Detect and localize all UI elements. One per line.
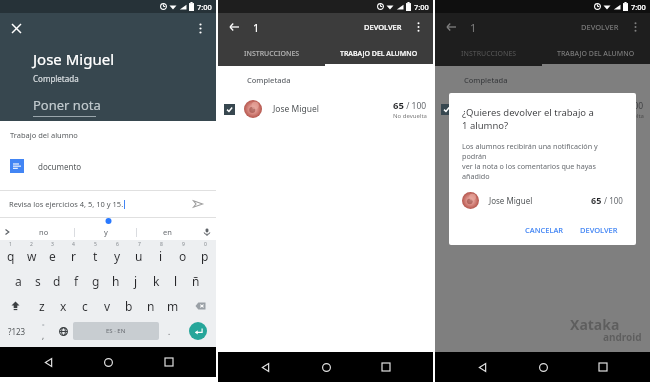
button[interactable]: ñ (186, 268, 206, 293)
button[interactable]: c (74, 293, 96, 318)
staticText: x (60, 298, 67, 314)
button[interactable]: documento (0, 154, 216, 178)
staticText: Jose Miguel (273, 103, 319, 115)
button[interactable]: s (28, 268, 47, 293)
button[interactable]: 3 (42, 240, 63, 268)
button[interactable]: ES · EN (73, 322, 159, 340)
button[interactable]: More options (189, 17, 211, 39)
button[interactable]: Expand (0, 224, 14, 240)
button[interactable]: Send (189, 195, 207, 213)
button[interactable]: 7 (128, 240, 150, 268)
button[interactable]: Home (95, 349, 121, 375)
button[interactable]: b (118, 293, 140, 318)
button[interactable]: Change language (53, 318, 73, 344)
staticText: Revisa los ejercicios 4, 5, 10 y 15. (9, 199, 124, 209)
button[interactable]: CANCELAR (520, 221, 569, 239)
button[interactable]: z (31, 293, 52, 318)
button[interactable]: Home (530, 354, 556, 380)
button[interactable]: More options (625, 17, 645, 37)
button[interactable]: Backspace (184, 293, 216, 318)
staticText: / 100 (621, 100, 644, 112)
button[interactable]: DEVOLVER (577, 18, 623, 36)
button[interactable]: Back (440, 16, 462, 38)
staticText: 7:00 (631, 2, 646, 12)
staticText: CANCELAR (525, 225, 564, 235)
button[interactable]: d (47, 268, 66, 293)
button[interactable]: Enter (189, 322, 207, 340)
staticText: android (603, 330, 642, 344)
button[interactable]: Selected (218, 96, 433, 122)
button[interactable]: a (9, 268, 28, 293)
button[interactable]: 1 (0, 240, 21, 268)
button[interactable]: x (52, 293, 74, 318)
button[interactable]: DEVOLVER (575, 221, 623, 239)
button[interactable]: Close (5, 17, 27, 39)
staticText: 7:00 (197, 2, 212, 12)
button[interactable]: 8 (150, 240, 172, 268)
staticText: ¿Quieres devolver el trabajo a (462, 106, 594, 119)
button[interactable]: 2 (21, 240, 42, 268)
button[interactable]: m (162, 293, 184, 318)
staticText: Poner nota (33, 96, 101, 114)
button[interactable]: Recents (156, 349, 182, 375)
button[interactable]: Recents (373, 354, 399, 380)
button[interactable]: . (159, 318, 179, 344)
staticText: y (114, 248, 121, 264)
button[interactable]: l (166, 268, 186, 293)
staticText: k (153, 273, 160, 289)
button[interactable]: y (75, 224, 136, 240)
button[interactable]: 6 (106, 240, 128, 268)
button[interactable]: 9 (172, 240, 194, 268)
button[interactable]: Back (35, 349, 61, 375)
button[interactable]: Selected (441, 104, 452, 115)
button[interactable]: 4 (63, 240, 84, 268)
staticText: Jose Miguel (33, 49, 115, 69)
button[interactable]: j (126, 268, 146, 293)
button[interactable]: ?123 (0, 318, 33, 344)
staticText: / 100 (404, 100, 427, 112)
button[interactable]: Voice input (198, 224, 216, 240)
button[interactable]: Home (313, 354, 339, 380)
staticText: 5 (94, 241, 97, 248)
button[interactable]: no (14, 224, 74, 240)
button[interactable]: TRABAJO DEL ALUMNO (325, 41, 433, 66)
button[interactable]: Back (223, 16, 245, 38)
staticText: 7:00 (414, 2, 429, 12)
button[interactable]: DEVOLVER (360, 18, 406, 36)
staticText: 2 (30, 241, 33, 248)
button[interactable]: h (106, 268, 126, 293)
button[interactable]: TRABAJO DEL ALUMNO (542, 41, 650, 66)
button[interactable]: Back (469, 354, 495, 380)
button[interactable]: 5 (84, 240, 106, 268)
button[interactable]: INSTRUCCIONES (435, 41, 542, 66)
staticText: ver la nota o los comentarios que hayas … (462, 161, 623, 181)
staticText: DEVOLVER (580, 225, 618, 235)
button[interactable]: ° (33, 318, 53, 344)
button[interactable]: Recents (590, 354, 616, 380)
button[interactable]: 0 (194, 240, 216, 268)
staticText: o (179, 248, 187, 264)
button[interactable]: Back (252, 354, 278, 380)
button[interactable]: n (140, 293, 162, 318)
button[interactable]: Shift (0, 293, 31, 318)
button[interactable]: Selected (224, 104, 235, 115)
staticText: g (92, 273, 100, 289)
button[interactable]: en (137, 224, 198, 240)
button[interactable]: g (86, 268, 106, 293)
staticText: DEVOLVER (364, 22, 402, 32)
staticText: / 100 (602, 195, 623, 206)
button[interactable]: Poner nota (33, 96, 101, 117)
button[interactable]: INSTRUCCIONES (218, 41, 325, 66)
button[interactable]: More options (408, 17, 428, 37)
staticText: ?123 (8, 326, 26, 337)
staticText: 4 (72, 241, 75, 248)
staticText: No devuelta (610, 112, 644, 120)
staticText: Jose Miguel (490, 103, 536, 115)
button[interactable]: v (96, 293, 118, 318)
staticText: Trabajo del alumno (10, 130, 78, 140)
button[interactable]: f (66, 268, 86, 293)
button[interactable]: Selected (435, 96, 650, 122)
button[interactable]: k (146, 268, 166, 293)
staticText: . (168, 326, 171, 337)
